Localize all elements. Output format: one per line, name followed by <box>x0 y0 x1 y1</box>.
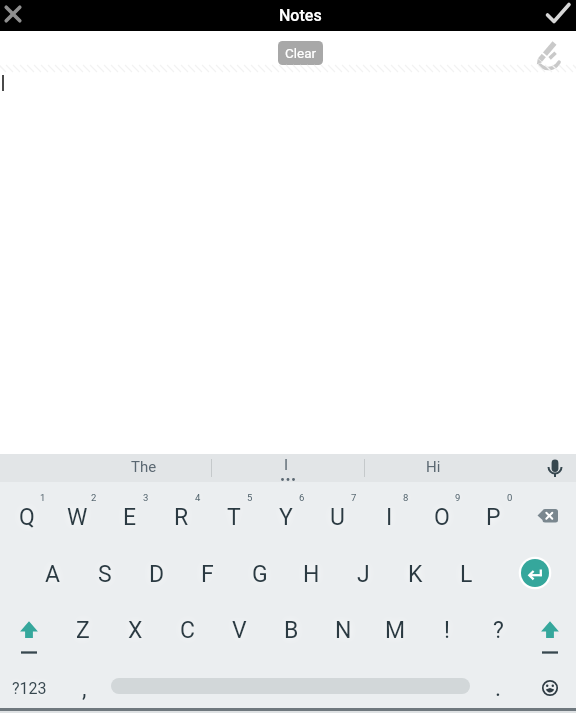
button[interactable]: G <box>234 546 285 602</box>
staticText: M <box>385 617 406 644</box>
staticText: ! <box>444 617 450 644</box>
button[interactable]: U <box>312 489 363 545</box>
button[interactable] <box>507 545 563 601</box>
staticText: 1 <box>40 492 46 503</box>
button[interactable]: ? <box>473 602 523 658</box>
button[interactable]: A <box>27 546 78 602</box>
button[interactable] <box>543 0 573 28</box>
button[interactable]: R <box>156 489 207 545</box>
button[interactable]: W <box>52 489 103 545</box>
button[interactable]: P <box>468 489 519 545</box>
button[interactable]: , <box>64 664 104 713</box>
staticText: 3 <box>143 492 149 503</box>
staticText: F <box>201 561 214 588</box>
button[interactable]: ?123 <box>1 663 57 713</box>
button[interactable] <box>542 456 568 482</box>
button[interactable]: I <box>364 489 415 545</box>
staticText: I <box>386 504 393 531</box>
staticText: 7 <box>351 492 357 503</box>
staticText: W <box>67 504 88 531</box>
button[interactable]: . <box>478 663 518 713</box>
staticText: R <box>174 504 189 531</box>
staticText: D <box>149 561 165 588</box>
staticText: ? <box>493 617 504 644</box>
button[interactable]: S <box>79 546 130 602</box>
staticText: 9 <box>455 492 461 503</box>
button[interactable] <box>528 666 572 710</box>
button[interactable]: Y <box>260 489 311 545</box>
staticText: L <box>460 561 473 588</box>
button[interactable]: I <box>246 454 326 476</box>
button[interactable]: B <box>266 602 316 658</box>
staticText: B <box>284 617 299 644</box>
staticText: A <box>45 561 61 588</box>
staticText: O <box>434 504 450 531</box>
button[interactable]: T <box>208 489 259 545</box>
staticText: Y <box>279 504 293 531</box>
button[interactable]: Z <box>58 602 108 658</box>
staticText: Q <box>19 504 35 531</box>
staticText: K <box>408 561 423 588</box>
staticText: X <box>128 617 143 644</box>
staticText: 4 <box>195 492 201 503</box>
staticText: U <box>330 504 345 531</box>
button[interactable]: H <box>286 546 337 602</box>
staticText: G <box>252 561 268 588</box>
button[interactable]: E <box>104 489 155 545</box>
staticText: I <box>284 456 289 474</box>
staticText: Clear <box>285 45 317 61</box>
staticText: The <box>131 458 157 476</box>
button[interactable] <box>0 0 26 28</box>
staticText: E <box>123 504 137 531</box>
button[interactable]: The <box>84 454 204 480</box>
button[interactable]: N <box>318 602 368 658</box>
staticText: Hi <box>426 458 441 476</box>
button[interactable]: O <box>416 489 467 545</box>
button[interactable]: D <box>131 546 182 602</box>
staticText: V <box>232 617 247 644</box>
staticText: . <box>495 675 502 702</box>
staticText: 8 <box>403 492 409 503</box>
staticText: J <box>357 561 370 588</box>
button[interactable]: Clear <box>278 41 323 65</box>
button[interactable]: C <box>162 602 212 658</box>
staticText: ?123 <box>12 679 47 698</box>
button[interactable]: M <box>370 602 420 658</box>
staticText: P <box>486 504 501 531</box>
button[interactable] <box>522 488 574 544</box>
staticText: S <box>98 561 112 588</box>
button[interactable]: L <box>441 546 492 602</box>
button[interactable]: K <box>390 546 441 602</box>
button[interactable] <box>524 35 568 75</box>
button[interactable]: J <box>338 546 389 602</box>
button[interactable]: F <box>182 546 233 602</box>
button[interactable] <box>1 602 57 662</box>
staticText: Notes <box>279 6 322 25</box>
button[interactable]: X <box>110 602 160 658</box>
staticText: H <box>303 561 320 588</box>
staticText: N <box>335 617 352 644</box>
button[interactable] <box>522 602 576 662</box>
button[interactable]: ! <box>422 602 472 658</box>
staticText: T <box>227 504 241 531</box>
staticText: 5 <box>247 492 253 503</box>
button[interactable]: V <box>214 602 264 658</box>
staticText: Z <box>76 617 90 644</box>
staticText: 0 <box>507 492 513 503</box>
staticText: 2 <box>91 492 97 503</box>
staticText: C <box>180 617 195 644</box>
staticText: 6 <box>299 492 305 503</box>
button[interactable]: Hi <box>383 454 483 480</box>
button[interactable]: Q <box>1 489 52 545</box>
staticText: , <box>82 676 87 703</box>
